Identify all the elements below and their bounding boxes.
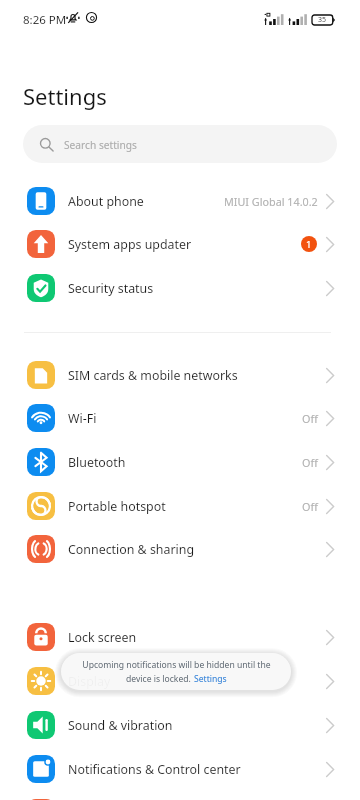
staticText: Upcoming notifications will be hidden un… (82, 659, 271, 671)
button[interactable]: Connection & sharing (0, 527, 360, 571)
button[interactable]: About phone (0, 179, 360, 223)
staticText: Notifications & Control center (68, 761, 241, 778)
button[interactable]: Search settings (23, 125, 337, 163)
staticText: Off (302, 455, 318, 470)
button[interactable]: System apps updater (0, 222, 360, 266)
staticText: SIM cards & mobile networks (68, 367, 238, 384)
staticText: Off (302, 411, 318, 426)
staticText: Settings (23, 81, 107, 111)
button[interactable]: Security status (0, 266, 360, 310)
staticText: Wi-Fi (68, 410, 97, 427)
staticText: Display (68, 673, 111, 690)
button[interactable]: Home screen (0, 791, 360, 800)
staticText: Sound & vibration (68, 717, 173, 734)
button[interactable]: Settings (194, 673, 227, 685)
staticText: Search settings (64, 138, 137, 152)
staticText: MIUI Global 14.0.2 (224, 194, 318, 209)
staticText: Security status (68, 280, 154, 297)
staticText: About phone (68, 193, 144, 210)
staticText: Lock screen (68, 629, 137, 646)
staticText: 8:26 PM (23, 12, 67, 28)
staticText: System apps updater (68, 236, 192, 253)
button[interactable]: Lock screen (0, 615, 360, 659)
staticText: device is locked. (126, 673, 194, 685)
button[interactable]: Sound & vibration (0, 703, 360, 747)
staticText: 35 (318, 15, 327, 25)
staticText: Connection & sharing (68, 541, 195, 558)
staticText: Portable hotspot (68, 498, 166, 515)
staticText: 1 (306, 238, 312, 251)
other: Silent mode (66, 11, 97, 24)
button[interactable]: Bluetooth (0, 440, 360, 484)
staticText: Off (302, 499, 318, 514)
button[interactable]: Notifications & Control center (0, 747, 360, 791)
button[interactable]: Display (0, 659, 360, 703)
button[interactable]: Portable hotspot (0, 484, 360, 528)
staticText: Bluetooth (68, 454, 126, 471)
button[interactable]: SIM cards & mobile networks (0, 353, 360, 397)
button[interactable]: Wi-Fi (0, 396, 360, 440)
